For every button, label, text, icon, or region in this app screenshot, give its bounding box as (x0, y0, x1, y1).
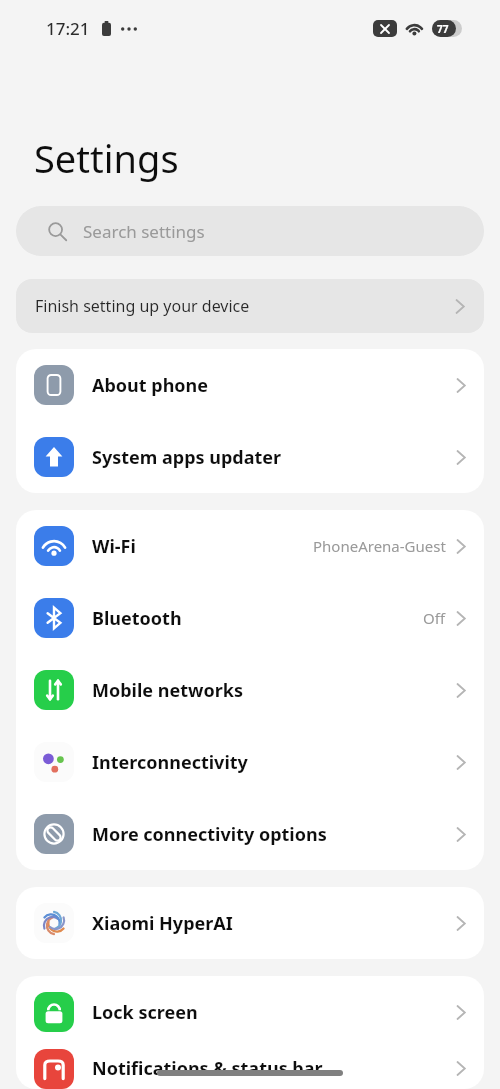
button[interactable]: Mobile networks (16, 654, 484, 726)
button[interactable]: Bluetooth (16, 582, 484, 654)
staticText: Search settings (83, 220, 205, 243)
staticText: Off (423, 608, 446, 628)
staticText: About phone (92, 373, 209, 398)
button[interactable]: Search settings (16, 206, 484, 256)
button[interactable]: Xiaomi HyperAI (16, 887, 484, 959)
staticText: Mobile networks (92, 678, 243, 703)
staticText: 17:21 (46, 17, 90, 40)
button[interactable]: Interconnectivity (16, 726, 484, 798)
staticText: Bluetooth (92, 606, 182, 631)
staticText: Settings (34, 132, 179, 184)
button[interactable]: About phone (16, 349, 484, 421)
staticText: PhoneArena-Guest (313, 536, 446, 556)
staticText: Interconnectivity (92, 750, 248, 775)
button[interactable]: Notifications & status bar (16, 1048, 484, 1089)
button[interactable]: System apps updater (16, 421, 484, 493)
staticText: Lock screen (92, 1000, 198, 1025)
button[interactable]: More connectivity options (16, 798, 484, 870)
staticText: Xiaomi HyperAI (92, 911, 233, 936)
button[interactable]: Finish setting up your device (16, 279, 484, 333)
staticText: System apps updater (92, 445, 282, 470)
staticText: Wi-Fi (92, 534, 136, 559)
staticText: 77 (437, 22, 449, 36)
staticText: More connectivity options (92, 822, 327, 847)
button[interactable]: Wi-Fi (16, 510, 484, 582)
button[interactable]: Lock screen (16, 976, 484, 1048)
staticText: Notifications & status bar (92, 1056, 323, 1081)
staticText: Finish setting up your device (35, 295, 250, 317)
